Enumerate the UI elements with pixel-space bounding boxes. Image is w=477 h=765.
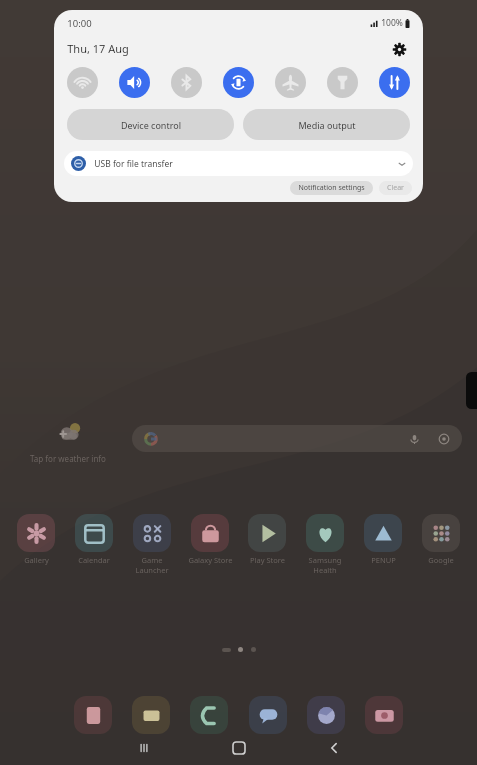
staticText: Gallery	[24, 555, 49, 565]
button[interactable]: Game Launcher	[126, 514, 178, 575]
button[interactable]: Gallery	[10, 514, 62, 565]
button[interactable]: Messages	[249, 696, 287, 734]
button[interactable]: PENUP	[357, 514, 409, 565]
button[interactable]: USB for file transfer	[64, 151, 413, 176]
button[interactable]: Notes	[74, 696, 112, 734]
button[interactable]: Sound	[119, 67, 150, 98]
staticText: Game Launcher	[126, 555, 178, 575]
button[interactable]: Auto rotate	[223, 67, 254, 98]
button[interactable]: Wi-Fi	[67, 67, 98, 98]
staticText: 10:00	[67, 17, 92, 30]
button[interactable]: Tap for weather info	[20, 418, 116, 464]
button[interactable]: Google	[415, 514, 467, 565]
staticText: Calendar	[78, 555, 110, 565]
button[interactable]: Notification settings	[290, 181, 373, 195]
button[interactable]: Google search	[132, 425, 462, 452]
staticText: 100%	[381, 17, 403, 29]
button[interactable]: Galaxy Store	[184, 514, 236, 565]
button[interactable]: Settings	[388, 38, 410, 60]
staticText: Google	[428, 555, 454, 565]
button[interactable]: Camera	[365, 696, 403, 734]
button[interactable]: Calendar	[68, 514, 120, 565]
staticText: Galaxy Store	[188, 555, 233, 565]
staticText: PENUP	[371, 555, 396, 565]
button[interactable]: Flashlight	[327, 67, 358, 98]
button[interactable]: Device control	[67, 109, 234, 140]
staticText: Samsung Health	[299, 555, 351, 575]
staticText: Device control	[121, 119, 181, 131]
button[interactable]: Internet	[307, 696, 345, 734]
staticText: Clear	[387, 183, 404, 193]
button[interactable]: Phone	[190, 696, 228, 734]
button[interactable]: Play Store	[241, 514, 293, 565]
staticText: Notification settings	[298, 183, 365, 193]
button[interactable]: Recents	[96, 731, 191, 765]
button[interactable]: Mobile data	[379, 67, 410, 98]
button[interactable]: Clear	[379, 181, 412, 195]
button[interactable]: Edge panel handle	[466, 372, 477, 409]
staticText: Media output	[298, 119, 356, 131]
staticText: Play Store	[250, 555, 285, 565]
staticText: Thu, 17 Aug	[67, 41, 129, 56]
button[interactable]: Bluetooth	[171, 67, 202, 98]
button[interactable]: Airplane mode	[275, 67, 306, 98]
button[interactable]: My Files	[132, 696, 170, 734]
button[interactable]: Back	[286, 731, 381, 765]
button[interactable]: Media output	[243, 109, 410, 140]
button[interactable]: Home	[191, 731, 286, 765]
staticText: Tap for weather info	[30, 453, 106, 464]
staticText: USB for file transfer	[94, 158, 173, 170]
button[interactable]: Samsung Health	[299, 514, 351, 575]
